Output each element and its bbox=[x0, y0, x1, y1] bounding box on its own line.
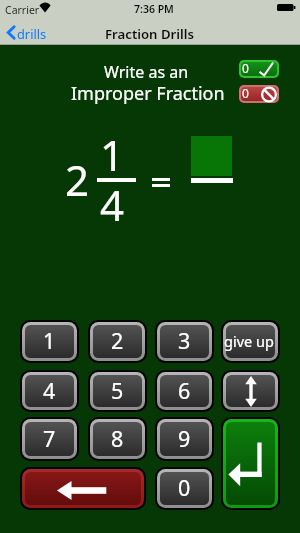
staticText: 2 bbox=[111, 326, 124, 355]
button[interactable]: 0 bbox=[155, 467, 214, 510]
button[interactable]: 1 bbox=[20, 320, 79, 363]
button[interactable]: 5 bbox=[88, 370, 147, 412]
staticText: drills bbox=[17, 25, 47, 42]
staticText: 1 bbox=[43, 326, 56, 355]
button[interactable]: 9 bbox=[155, 417, 214, 461]
button[interactable] bbox=[221, 417, 280, 510]
staticText: 9 bbox=[178, 424, 191, 453]
staticText: Fraction Drills bbox=[105, 25, 195, 42]
staticText: 0 bbox=[178, 473, 191, 502]
staticText: 0 bbox=[242, 60, 249, 76]
button[interactable]: 7 bbox=[20, 417, 79, 461]
staticText: 4 bbox=[43, 376, 56, 405]
staticText: 4 bbox=[100, 176, 125, 233]
staticText: 0 bbox=[242, 85, 249, 101]
staticText: 2 bbox=[65, 151, 90, 208]
staticText: 8 bbox=[111, 424, 124, 453]
button[interactable] bbox=[20, 467, 146, 510]
staticText: 7:36 PM bbox=[134, 2, 174, 16]
staticText: 1 bbox=[100, 126, 125, 183]
staticText: Write as an bbox=[104, 61, 189, 83]
button[interactable]: 8 bbox=[88, 417, 147, 461]
button[interactable] bbox=[221, 370, 280, 412]
button[interactable]: 6 bbox=[155, 370, 214, 412]
staticText: 7 bbox=[43, 424, 56, 453]
button[interactable]: drills bbox=[4, 22, 48, 43]
staticText: 3 bbox=[178, 326, 191, 355]
staticText: 5 bbox=[111, 376, 124, 405]
staticText: Carrier bbox=[5, 3, 40, 17]
button[interactable]: 2 bbox=[88, 320, 147, 363]
button[interactable]: 3 bbox=[155, 320, 214, 363]
staticText: Improper Fraction bbox=[71, 81, 225, 106]
button[interactable]: give up bbox=[221, 320, 280, 363]
staticText: 6 bbox=[178, 376, 191, 405]
button[interactable]: 4 bbox=[20, 370, 79, 412]
staticText: give up bbox=[224, 331, 273, 351]
